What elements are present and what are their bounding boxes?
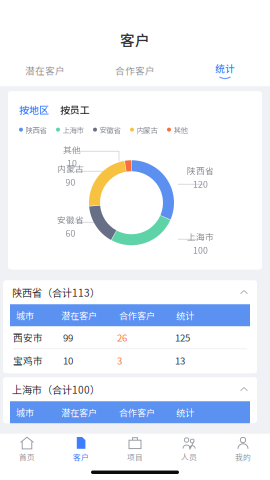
button[interactable]: 合作客户 bbox=[90, 63, 180, 77]
staticText: 合作客户 bbox=[119, 309, 155, 322]
staticText: 安徽省 bbox=[99, 124, 120, 135]
staticText: 客户 bbox=[120, 29, 150, 50]
staticText: 其他 bbox=[63, 143, 81, 156]
staticText: 潜在客户 bbox=[61, 309, 97, 322]
staticText: 上海市 bbox=[62, 124, 83, 135]
staticText: 125 bbox=[175, 330, 190, 344]
staticText: 宝鸡市 bbox=[13, 353, 43, 367]
staticText: 100 bbox=[193, 244, 208, 256]
staticText: 统计 bbox=[215, 61, 235, 75]
staticText: 首页 bbox=[19, 451, 35, 463]
staticText: 安徽省 bbox=[57, 213, 84, 226]
staticText: 10 bbox=[63, 353, 73, 367]
staticText: 潜在客户 bbox=[25, 63, 65, 77]
staticText: 人员 bbox=[181, 451, 197, 463]
staticText: 陕西省 bbox=[25, 124, 46, 135]
staticText: 城市 bbox=[16, 406, 34, 419]
staticText: 合作客户 bbox=[119, 406, 155, 419]
staticText: 其他 bbox=[173, 124, 187, 135]
staticText: 统计 bbox=[176, 406, 194, 419]
staticText: 内蒙古 bbox=[136, 124, 157, 135]
staticText: 按员工 bbox=[60, 102, 90, 116]
staticText: 按地区 bbox=[19, 102, 49, 116]
staticText: 120 bbox=[193, 178, 208, 190]
button[interactable]: 首页 bbox=[0, 433, 54, 465]
staticText: 60 bbox=[65, 227, 75, 239]
button[interactable]: 按地区 bbox=[19, 102, 49, 116]
staticText: 我的 bbox=[235, 451, 251, 463]
staticText: 3 bbox=[117, 353, 122, 367]
button[interactable]: 陕西省（合计113） bbox=[3, 280, 257, 304]
button[interactable]: 人员 bbox=[162, 433, 216, 465]
staticText: 陕西省 bbox=[187, 164, 214, 177]
button[interactable]: 上海市（合计100） bbox=[3, 377, 257, 401]
staticText: 13 bbox=[175, 353, 185, 367]
staticText: 潜在客户 bbox=[61, 406, 97, 419]
staticText: 统计 bbox=[176, 309, 194, 322]
button[interactable]: 项目 bbox=[108, 433, 162, 465]
button[interactable]: 我的 bbox=[216, 433, 270, 465]
staticText: 客户 bbox=[73, 451, 89, 463]
staticText: 西安市 bbox=[13, 330, 43, 344]
button[interactable]: 客户 bbox=[54, 433, 108, 465]
staticText: 10 bbox=[67, 157, 77, 169]
staticText: 合作客户 bbox=[115, 63, 155, 77]
button[interactable]: 按员工 bbox=[60, 102, 90, 116]
staticText: 上海市 bbox=[187, 230, 214, 243]
staticText: 上海市（合计100） bbox=[12, 382, 100, 397]
button[interactable]: 潜在客户 bbox=[0, 63, 90, 77]
button[interactable]: 统计 bbox=[180, 61, 270, 79]
staticText: 城市 bbox=[16, 309, 34, 322]
staticText: 陕西省（合计113） bbox=[12, 285, 100, 300]
staticText: 内蒙古 bbox=[57, 162, 84, 175]
staticText: 项目 bbox=[127, 451, 143, 463]
staticText: 90 bbox=[65, 176, 75, 188]
staticText: 99 bbox=[63, 330, 73, 344]
staticText: 26 bbox=[117, 330, 127, 344]
